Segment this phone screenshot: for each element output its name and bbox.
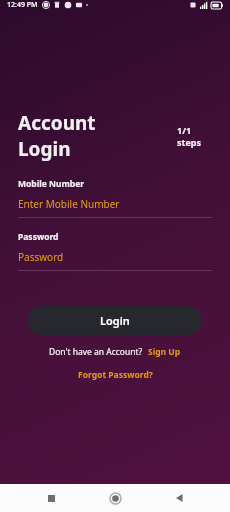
staticText: Mobile Number [18,178,85,190]
staticText: Account [18,110,96,136]
staticText: Forgot Password? [78,369,153,381]
staticText: Password [18,250,64,264]
button[interactable]: Sign Up [148,346,181,358]
button[interactable]: Password [18,250,212,264]
staticText: Don't have an Account? [49,346,143,358]
staticText: Password [18,231,59,243]
button[interactable]: Login [28,306,202,335]
button[interactable]: Forgot Password? [78,369,153,381]
staticText: 12:49 PM [7,0,38,10]
button[interactable]: Recent apps [37,484,65,512]
staticText: Enter Mobile Number [18,197,120,211]
button[interactable]: Enter Mobile Number [18,197,212,211]
staticText: Login [100,313,130,328]
staticText: Sign Up [148,346,181,358]
staticText: 1/1 [177,124,192,136]
staticText: steps [177,136,202,148]
staticText: Login [18,136,71,162]
button[interactable]: Back [166,484,194,512]
button[interactable]: Home [101,484,129,512]
